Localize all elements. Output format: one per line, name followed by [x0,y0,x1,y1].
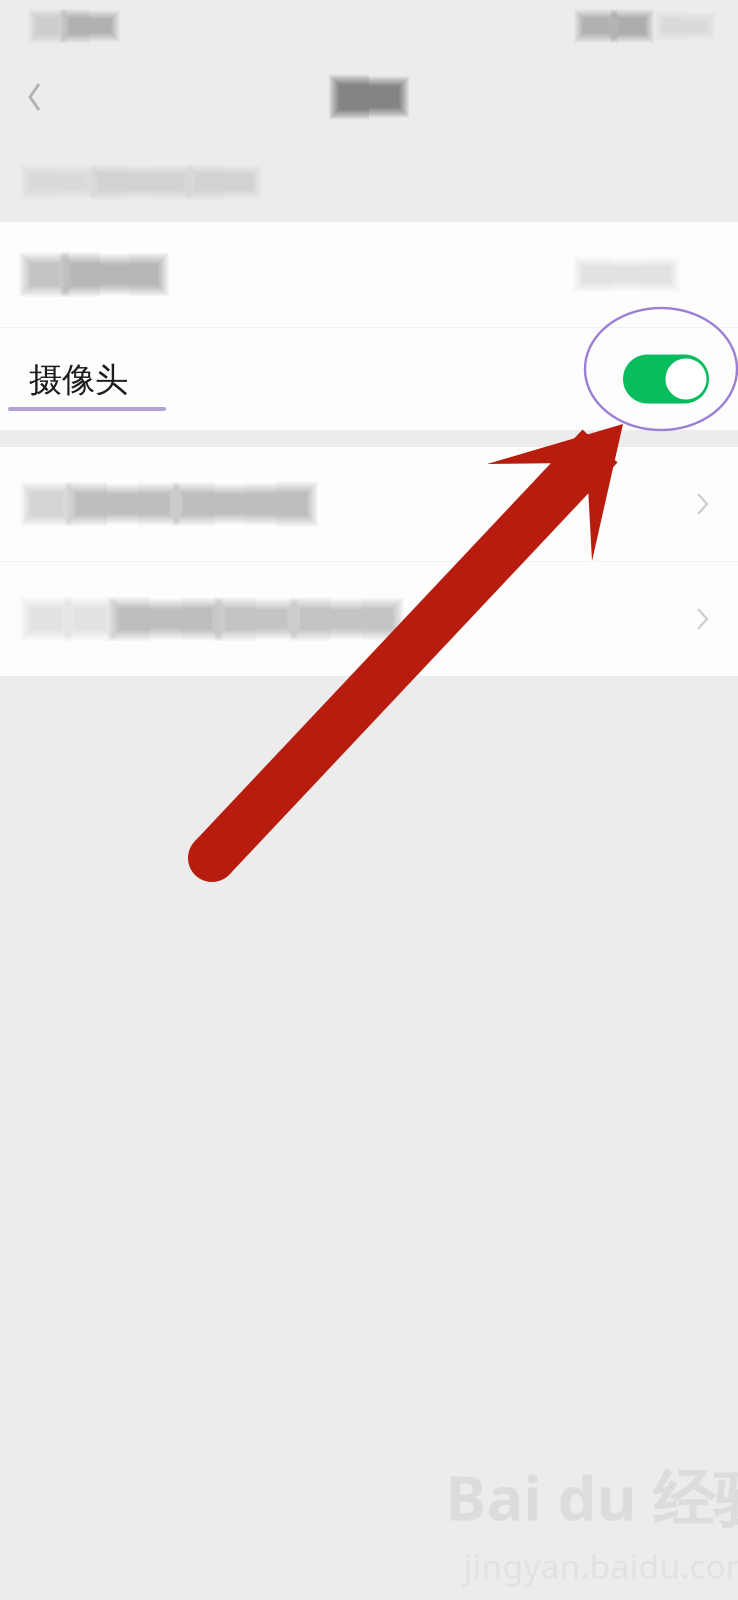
button[interactable]: Back [0,57,70,137]
button[interactable] [0,447,738,561]
button[interactable]: 摄像头 [0,328,738,430]
staticText: jingyan.baidu.com [463,1544,738,1588]
staticText: 摄像头 [29,359,128,400]
staticText: Bai du 经验 [445,1456,738,1538]
button[interactable] [0,222,738,327]
button[interactable] [0,562,738,676]
